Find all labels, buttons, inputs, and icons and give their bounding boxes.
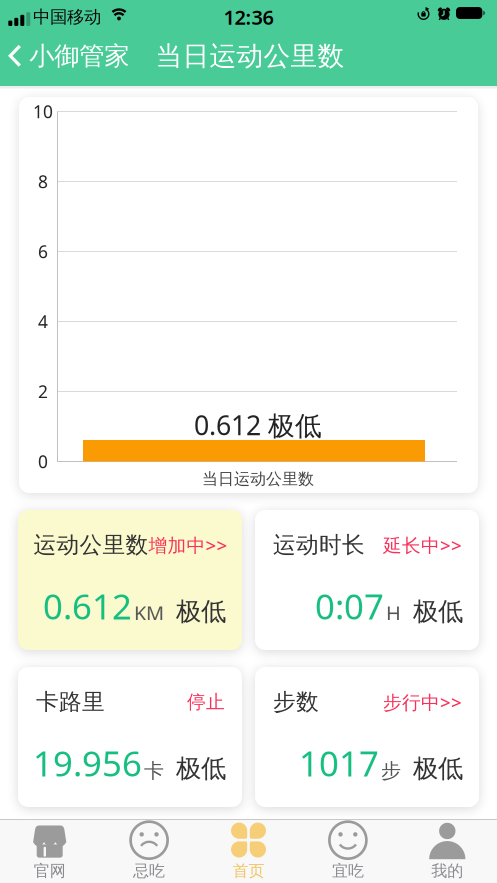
- button[interactable]: 返回 小御管家: [1, 33, 139, 79]
- button[interactable]: 宜吃: [298, 819, 398, 883]
- button[interactable]: 忌吃: [99, 819, 199, 883]
- staticText: 2: [38, 380, 48, 403]
- staticText: 步: [381, 758, 401, 783]
- staticText: 官网: [34, 861, 66, 881]
- staticText: 0.612: [43, 583, 132, 629]
- staticText: 首页: [232, 861, 264, 881]
- button[interactable]: 运动时长: [255, 510, 479, 650]
- staticText: 运动时长: [273, 531, 365, 559]
- staticText: 步行中>>: [383, 689, 462, 714]
- staticText: 我的: [431, 861, 463, 881]
- staticText: 当日运动公里数: [155, 40, 344, 72]
- staticText: 8: [38, 170, 48, 193]
- staticText: 0:07: [315, 583, 384, 629]
- staticText: 卡: [144, 758, 164, 783]
- staticText: 小御管家: [29, 40, 129, 71]
- staticText: 增加中>>: [148, 532, 227, 557]
- button[interactable]: 步数: [255, 667, 479, 807]
- staticText: 12:36: [223, 4, 273, 30]
- staticText: 当日运动公里数: [202, 469, 314, 489]
- staticText: 6: [38, 240, 48, 263]
- button[interactable]: 首页: [199, 819, 298, 883]
- staticText: 极低: [176, 596, 226, 627]
- button[interactable]: 运动公里数: [18, 510, 242, 650]
- staticText: 1017: [299, 740, 379, 786]
- staticText: 忌吃: [133, 861, 165, 881]
- staticText: 0: [38, 450, 48, 473]
- staticText: 宜吃: [332, 861, 364, 881]
- staticText: 10: [33, 100, 53, 123]
- staticText: 中国移动: [33, 6, 101, 28]
- staticText: 卡路里: [36, 688, 105, 716]
- staticText: 极低: [413, 596, 463, 627]
- staticText: 延长中>>: [383, 532, 462, 557]
- staticText: 极低: [176, 753, 226, 784]
- staticText: 步数: [273, 688, 319, 716]
- staticText: 运动公里数: [33, 531, 148, 559]
- staticText: H: [386, 599, 401, 626]
- staticText: 极低: [413, 753, 463, 784]
- staticText: 19.956: [33, 740, 142, 786]
- staticText: 4: [38, 310, 48, 333]
- staticText: KM: [134, 599, 164, 626]
- button[interactable]: 官网: [0, 819, 99, 883]
- staticText: 0.612 极低: [194, 407, 322, 443]
- button[interactable]: 我的: [398, 819, 497, 883]
- staticText: 停止: [187, 690, 225, 713]
- button[interactable]: 卡路里: [18, 667, 242, 807]
